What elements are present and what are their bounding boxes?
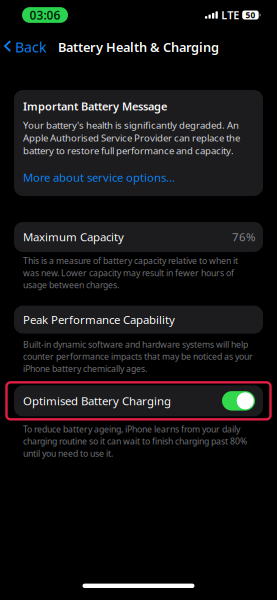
button[interactable]: Optimised Battery Charging [14,385,263,416]
button[interactable]: Peak Performance Capability [14,306,263,334]
staticText: Battery Health & Charging [58,38,219,55]
staticText: More about service options... [23,170,175,185]
staticText: LTE [221,8,239,22]
staticText: Your battery's health is significantly d… [23,119,240,157]
staticText: To reduce battery ageing, iPhone learns … [23,423,247,459]
staticText: Back [15,38,47,56]
button[interactable]: Back [2,34,50,60]
staticText: Maximum Capacity [23,229,124,244]
button[interactable]: More about service options... [23,157,255,196]
button[interactable]: Maximum Capacity [14,222,263,252]
staticText: 50 [245,9,255,20]
staticText: 03:06 [29,7,60,23]
staticText: Optimised Battery Charging [23,393,171,408]
staticText: Important Battery Message [23,99,167,114]
staticText: Built-in dynamic software and hardware s… [23,339,253,374]
staticText: 76% [232,229,255,244]
staticText: This is a measure of battery capacity re… [23,255,238,291]
staticText: Peak Performance Capability [23,312,175,327]
